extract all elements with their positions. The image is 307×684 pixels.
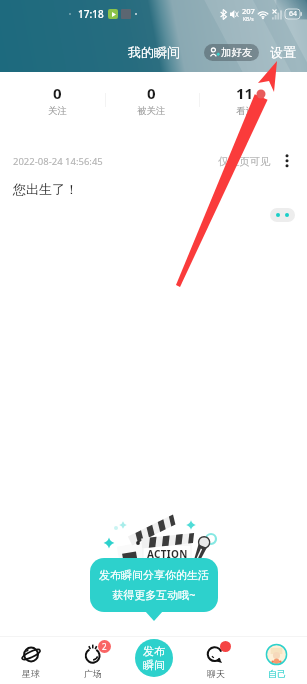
staticText: 64 xyxy=(289,9,298,19)
staticText: 获得更多互动哦~ xyxy=(112,587,196,602)
staticText: 被关注 xyxy=(137,105,166,117)
button[interactable]: More options xyxy=(279,153,295,169)
button[interactable]: 我的瞬间 xyxy=(124,39,184,65)
staticText: 11 xyxy=(236,83,254,103)
button[interactable]: 加好友 xyxy=(204,44,259,61)
button[interactable]: Like and comment xyxy=(270,208,295,222)
button[interactable]: 0 xyxy=(11,83,104,117)
staticText: KB/s xyxy=(243,16,254,23)
staticText: 广场 xyxy=(84,668,102,679)
button[interactable]: 2 xyxy=(62,636,124,679)
staticText: 发布 xyxy=(143,644,165,658)
staticText: 2 xyxy=(102,641,107,652)
staticText: ACTION xyxy=(147,547,188,561)
button[interactable]: 发布 xyxy=(135,639,173,677)
staticText: 加好友 xyxy=(221,46,253,59)
staticText: 自己 xyxy=(268,668,286,679)
staticText: 发布瞬间分享你的生活 xyxy=(99,568,209,582)
staticText: 设置 xyxy=(270,44,296,60)
staticText: 星球 xyxy=(22,668,40,679)
staticText: 聊天 xyxy=(207,668,225,679)
button[interactable]: 星球 xyxy=(0,636,62,679)
staticText: 仅主页可见 xyxy=(218,155,271,168)
staticText: 0 xyxy=(147,83,156,103)
button[interactable]: 11 xyxy=(198,83,292,117)
staticText: 2022-08-24 14:56:45 xyxy=(13,155,103,168)
staticText: 关注 xyxy=(48,105,67,117)
staticText: 您出生了！ xyxy=(13,181,78,197)
staticText: 0 xyxy=(53,83,62,103)
staticText: 207 xyxy=(242,6,255,16)
staticText: 瞬间 xyxy=(143,658,165,672)
staticText: 17:18 xyxy=(78,7,104,21)
button[interactable]: 聊天 xyxy=(185,636,246,679)
button[interactable]: 0 xyxy=(104,83,198,117)
button[interactable]: 自己 xyxy=(246,636,307,679)
button[interactable]: 设置 xyxy=(268,39,298,65)
button[interactable]: 发布瞬间分享你的生活 xyxy=(99,568,209,602)
staticText: 看过 xyxy=(236,105,255,117)
staticText: 我的瞬间 xyxy=(128,44,180,60)
